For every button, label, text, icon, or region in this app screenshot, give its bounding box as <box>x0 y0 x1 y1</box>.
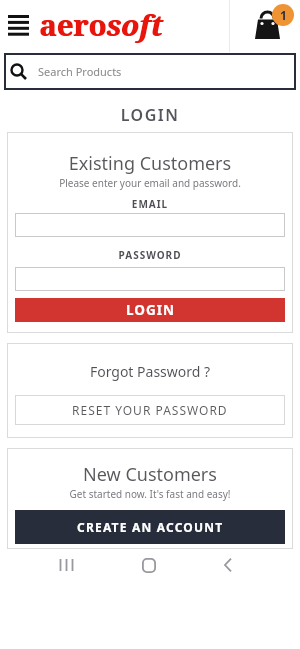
staticText: aerosoft <box>40 5 164 44</box>
button[interactable] <box>5 12 31 38</box>
button[interactable] <box>15 267 285 291</box>
button[interactable]: Search Products <box>4 53 296 90</box>
staticText: PASSWORD <box>7 248 293 262</box>
staticText: RESET YOUR PASSWORD <box>72 402 228 418</box>
staticText: Forgot Password ? <box>7 362 293 381</box>
staticText: 1 <box>280 7 287 23</box>
button[interactable] <box>214 551 242 579</box>
staticText: Please enter your email and password. <box>7 176 293 190</box>
staticText: CREATE AN ACCOUNT <box>77 519 224 535</box>
staticText: New Customers <box>7 462 293 487</box>
staticText: Get started now. It's fast and easy! <box>7 487 293 501</box>
button[interactable]: LOGIN <box>15 298 285 322</box>
staticText: Search Products <box>38 64 122 79</box>
staticText: aerosoft <box>39 5 163 44</box>
staticText: LOGIN <box>0 104 300 126</box>
button[interactable]: 1 <box>248 6 294 50</box>
button[interactable] <box>53 551 81 579</box>
staticText: EMAIL <box>7 197 293 211</box>
button[interactable] <box>135 551 163 579</box>
button[interactable]: CREATE AN ACCOUNT <box>15 510 285 544</box>
button[interactable]: RESET YOUR PASSWORD <box>15 395 285 425</box>
button[interactable] <box>15 213 285 237</box>
staticText: LOGIN <box>126 301 175 319</box>
staticText: Existing Customers <box>7 151 293 176</box>
